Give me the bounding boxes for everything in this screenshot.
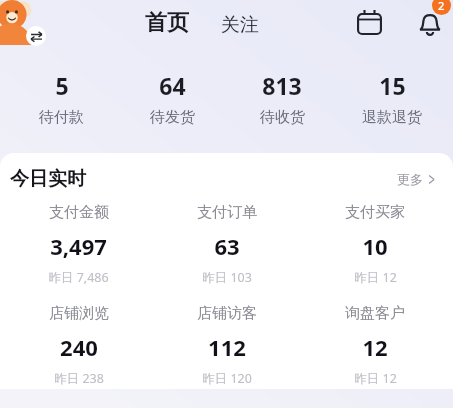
staticText: 首页 xyxy=(145,9,189,37)
staticText: 昨日 12 xyxy=(354,370,397,387)
staticText: 昨日 120 xyxy=(202,370,252,387)
staticText: 63 xyxy=(214,231,240,261)
button[interactable]: 5 xyxy=(6,66,117,131)
staticText: 退款退货 xyxy=(362,108,422,127)
button[interactable]: 支付买家 xyxy=(301,201,449,288)
staticText: 昨日 103 xyxy=(202,269,252,286)
staticText: 昨日 7,486 xyxy=(48,269,109,286)
button[interactable]: 813 xyxy=(227,66,337,131)
staticText: 5 xyxy=(55,70,69,101)
staticText: 10 xyxy=(362,231,388,261)
staticText: 3,497 xyxy=(50,231,107,261)
staticText: 64 xyxy=(159,70,186,101)
button[interactable]: 询盘客户 xyxy=(301,302,449,389)
staticText: 昨日 238 xyxy=(54,370,104,387)
staticText: 店铺浏览 xyxy=(49,304,109,323)
button[interactable]: 支付金额 xyxy=(4,201,153,288)
button[interactable]: 15 xyxy=(337,66,447,131)
staticText: 支付订单 xyxy=(197,203,257,222)
button[interactable]: 支付订单 xyxy=(153,201,301,288)
staticText: 更多 xyxy=(397,171,423,187)
staticText: 15 xyxy=(379,70,406,101)
staticText: 待付款 xyxy=(39,108,84,127)
staticText: 待收货 xyxy=(260,108,305,127)
button[interactable]: 64 xyxy=(117,66,227,131)
button[interactable]: Account avatar xyxy=(0,0,40,50)
button[interactable]: Notifications, 2 unread xyxy=(412,4,448,40)
staticText: 支付金额 xyxy=(49,203,109,222)
staticText: 813 xyxy=(262,70,302,101)
button[interactable]: 店铺访客 xyxy=(153,302,301,389)
button[interactable]: 关注 xyxy=(219,13,261,37)
staticText: 今日实时 xyxy=(10,167,86,191)
staticText: 2 xyxy=(438,0,445,13)
staticText: 12 xyxy=(362,332,388,362)
staticText: 昨日 12 xyxy=(354,269,397,286)
staticText: 支付买家 xyxy=(345,203,405,222)
button[interactable]: 更多 xyxy=(393,167,441,191)
staticText: 询盘客户 xyxy=(345,304,405,323)
staticText: 店铺访客 xyxy=(197,304,257,323)
staticText: 240 xyxy=(60,332,98,362)
staticText: 待发货 xyxy=(150,108,195,127)
button[interactable]: 首页 xyxy=(143,9,191,37)
button[interactable]: Calendar xyxy=(352,5,386,39)
staticText: 112 xyxy=(208,332,246,362)
button[interactable]: 店铺浏览 xyxy=(4,302,153,389)
staticText: 关注 xyxy=(221,13,259,37)
